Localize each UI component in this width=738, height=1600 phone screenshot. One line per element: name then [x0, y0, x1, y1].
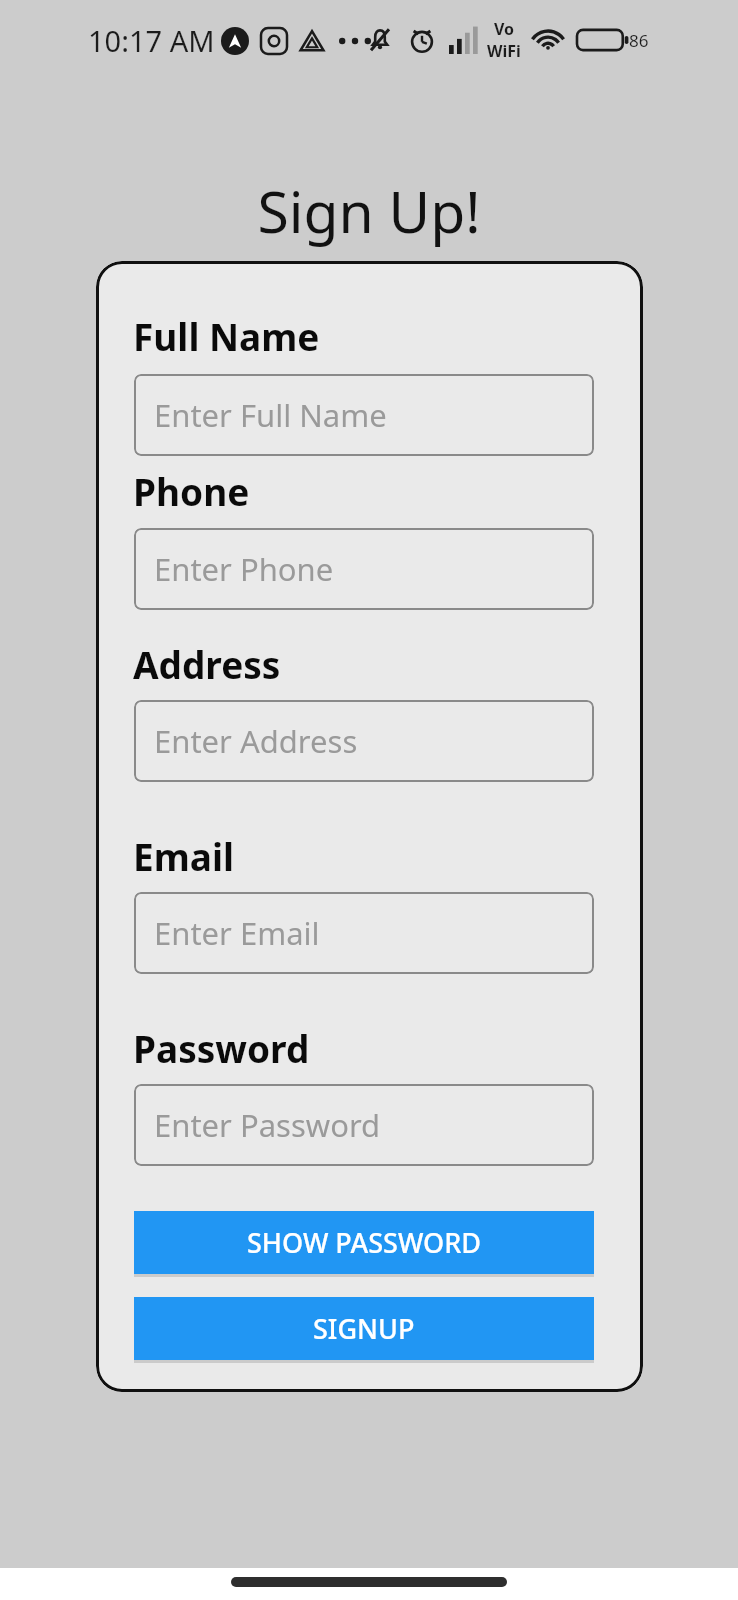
- button[interactable]: Enter Password: [134, 1084, 594, 1166]
- staticText: Enter Password: [154, 1104, 381, 1146]
- button[interactable]: SHOW PASSWORD: [134, 1211, 594, 1274]
- staticText: Vo: [494, 18, 515, 40]
- staticText: Enter Phone: [154, 548, 334, 590]
- button[interactable]: Enter Email: [134, 892, 594, 974]
- staticText: SIGNUP: [313, 1310, 415, 1347]
- staticText: SHOW PASSWORD: [247, 1224, 481, 1261]
- staticText: Email: [133, 831, 235, 881]
- staticText: WiFi: [487, 40, 521, 62]
- staticText: Enter Email: [154, 912, 320, 954]
- staticText: Phone: [133, 466, 250, 516]
- staticText: 10:17 AM: [88, 21, 215, 60]
- button[interactable]: Enter Address: [134, 700, 594, 782]
- staticText: Sign Up!: [0, 172, 738, 250]
- staticText: Password: [133, 1023, 310, 1073]
- staticText: Full Name: [133, 311, 320, 361]
- staticText: Enter Address: [154, 720, 358, 762]
- staticText: Enter Full Name: [154, 394, 387, 436]
- button[interactable]: SIGNUP: [134, 1297, 594, 1360]
- staticText: Address: [133, 639, 281, 689]
- button[interactable]: Enter Phone: [134, 528, 594, 610]
- staticText: 86: [629, 29, 649, 52]
- button[interactable]: Enter Full Name: [134, 374, 594, 456]
